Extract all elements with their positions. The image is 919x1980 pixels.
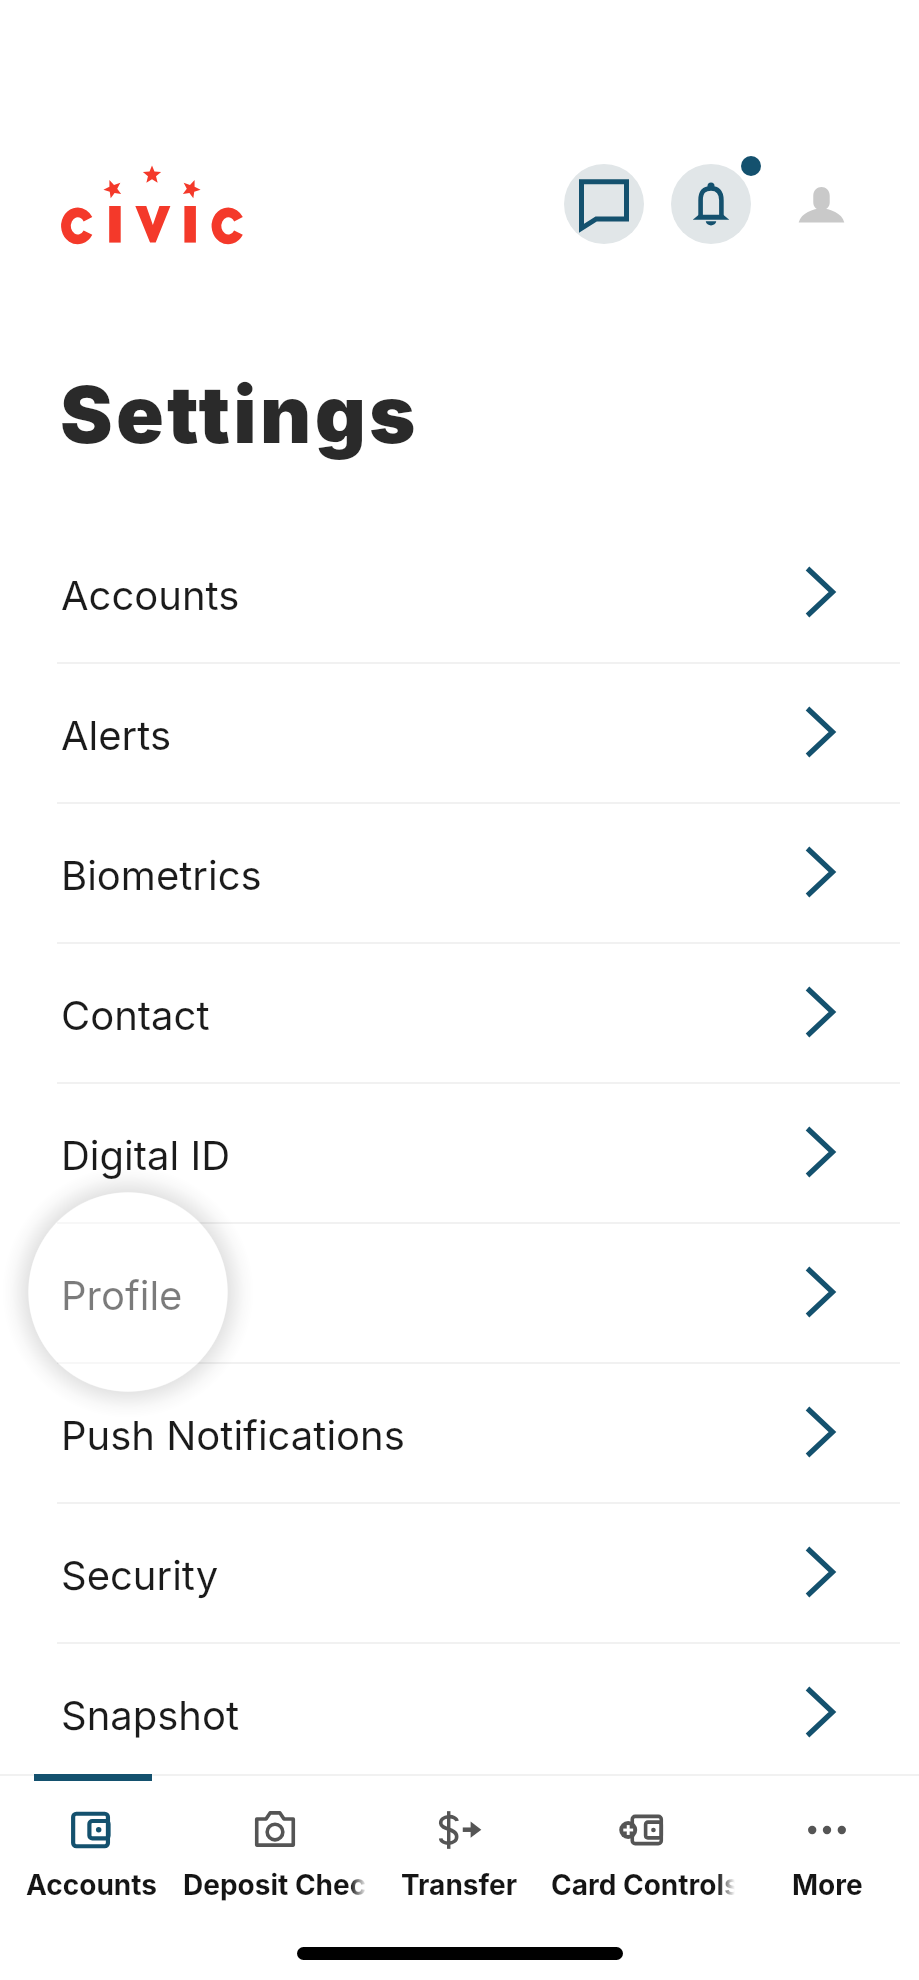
button[interactable]: Civic — [59, 162, 246, 246]
staticText: Push Notifications — [61, 1411, 405, 1459]
button[interactable]: Account profile — [790, 172, 852, 234]
button[interactable]: Contact — [0, 942, 919, 1082]
staticText: Biometrics — [61, 851, 262, 899]
staticText: More — [792, 1868, 863, 1902]
button[interactable]: Push Notifications — [0, 1362, 919, 1502]
staticText: Digital ID — [61, 1131, 231, 1179]
staticText: Contact — [61, 991, 210, 1039]
button[interactable]: Card Controls — [551, 1782, 735, 1922]
staticText: Settings — [60, 366, 419, 462]
button[interactable]: Accounts — [0, 522, 919, 662]
button[interactable]: Snapshot — [0, 1642, 919, 1782]
staticText: Snapshot — [61, 1691, 240, 1739]
button[interactable]: Digital ID — [0, 1082, 919, 1222]
button[interactable]: Messages — [564, 164, 644, 244]
staticText: Deposit Check — [183, 1868, 367, 1902]
button[interactable]: Alerts — [0, 662, 919, 802]
staticText: Security — [61, 1551, 219, 1599]
button[interactable]: Security — [0, 1502, 919, 1642]
staticText: Accounts — [61, 571, 240, 619]
button[interactable]: Notifications — [671, 164, 751, 244]
button[interactable]: Transfer — [367, 1782, 551, 1922]
staticText: Card Controls — [551, 1868, 735, 1902]
staticText: Profile — [61, 1271, 183, 1319]
button[interactable]: Accounts — [0, 1782, 183, 1922]
button[interactable]: Profile — [0, 1222, 919, 1362]
button[interactable]: Biometrics — [0, 802, 919, 942]
staticText: Alerts — [61, 711, 172, 759]
staticText: Transfer — [401, 1868, 518, 1902]
button[interactable]: Deposit Check — [183, 1782, 367, 1922]
staticText: Accounts — [26, 1868, 157, 1902]
button[interactable]: More — [735, 1782, 919, 1922]
